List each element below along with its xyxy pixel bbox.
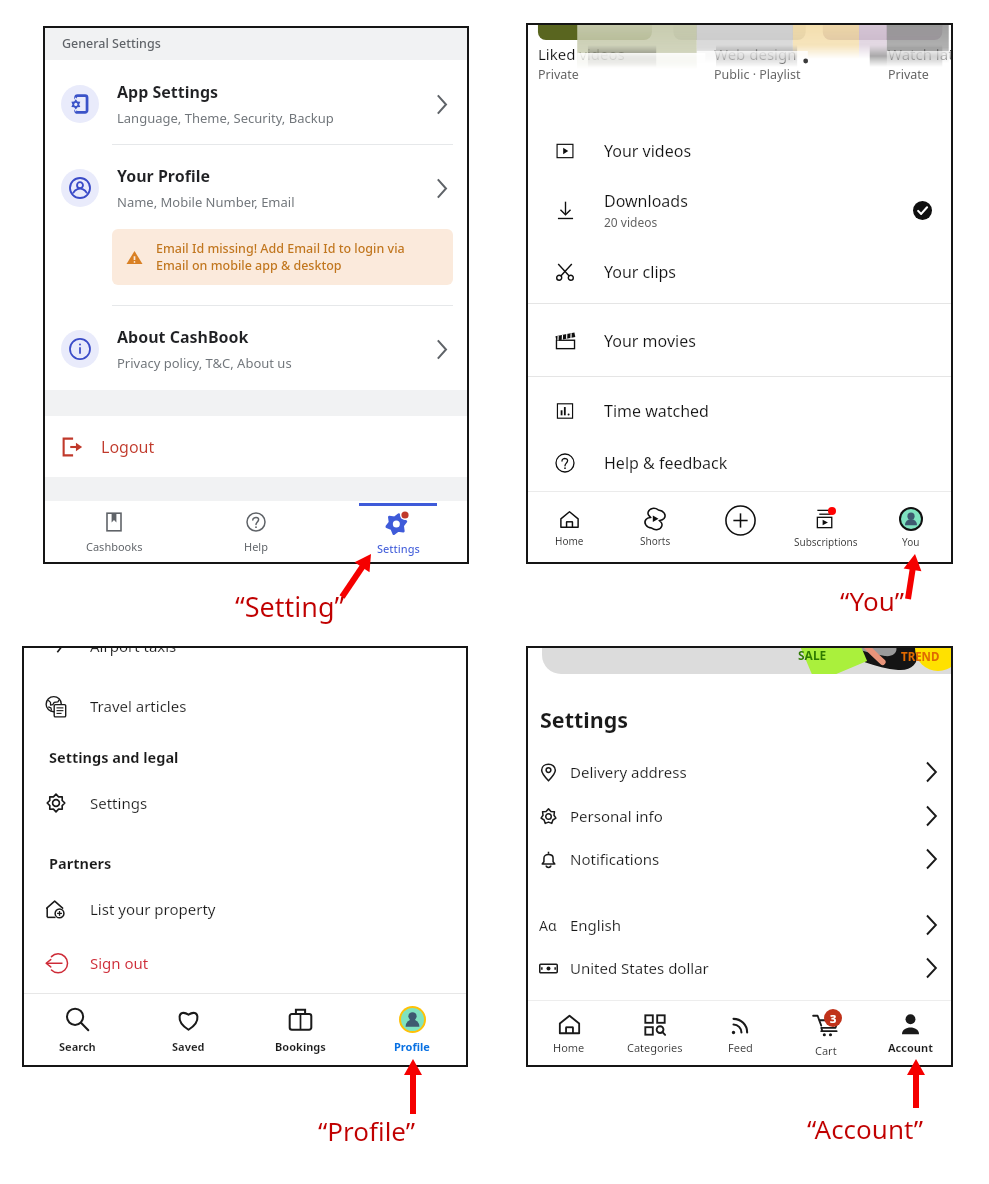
staticText: Delivery address	[570, 762, 687, 782]
staticText: Help & feedback	[604, 452, 728, 474]
staticText: Help	[244, 539, 268, 554]
button[interactable]: Create	[698, 495, 783, 561]
staticText: Saved	[172, 1039, 205, 1054]
button[interactable]: 3	[783, 1001, 868, 1067]
staticText: Shorts	[640, 534, 671, 548]
button[interactable]: Saved	[133, 994, 244, 1066]
button[interactable]: Your Profile	[43, 148, 469, 228]
button[interactable]: Your movies	[526, 318, 953, 364]
staticText: Categories	[627, 1040, 683, 1055]
button[interactable]: Airport taxis	[22, 646, 468, 661]
button[interactable]: App Settings	[43, 64, 469, 144]
button[interactable]: Subscriptions	[783, 495, 868, 561]
button[interactable]: Logout	[43, 416, 469, 477]
staticText: Personal info	[570, 806, 663, 826]
staticText: Subscriptions	[794, 535, 858, 549]
button[interactable]: Help & feedback	[526, 440, 953, 486]
button[interactable]: United States dollar	[526, 948, 953, 988]
staticText: Cashbooks	[86, 539, 143, 554]
staticText: Home	[555, 534, 584, 548]
staticText: Sign out	[90, 953, 149, 973]
button[interactable]: About CashBook	[43, 309, 469, 389]
button[interactable]: Time watched	[526, 388, 953, 434]
staticText: Privacy policy, T&C, About us	[117, 354, 292, 372]
staticText: Bookings	[275, 1039, 326, 1054]
staticText: Downloads	[604, 190, 688, 212]
button[interactable]: Feed	[698, 1001, 783, 1067]
staticText: Settings	[90, 793, 148, 813]
staticText: Logout	[101, 436, 155, 458]
button[interactable]: Aα	[526, 905, 953, 945]
button[interactable]: Categories	[612, 1001, 698, 1067]
button[interactable]: Personal info	[526, 796, 953, 836]
staticText: You	[902, 535, 920, 549]
staticText: Home	[553, 1040, 585, 1055]
staticText: Email Id missing! Add Email Id to login …	[156, 240, 405, 274]
button[interactable]: Settings	[22, 781, 468, 825]
staticText: Watch later	[888, 44, 953, 64]
button[interactable]: Travel articles	[22, 684, 468, 728]
staticText: Travel articles	[90, 696, 187, 716]
button[interactable]: Shorts	[612, 495, 698, 561]
staticText: About CashBook	[117, 326, 249, 348]
staticText: App Settings	[117, 81, 219, 103]
staticText: Your movies	[604, 330, 696, 352]
staticText: “Account”	[807, 1111, 924, 1146]
staticText: Airport taxis	[90, 646, 177, 656]
staticText: Feed	[728, 1040, 753, 1055]
staticText: Cart	[815, 1043, 837, 1058]
button[interactable]: Sign out	[22, 941, 468, 985]
staticText: English	[570, 915, 622, 935]
staticText: “Setting”	[235, 588, 345, 625]
staticText: Profile	[394, 1039, 430, 1054]
staticText: United States dollar	[570, 958, 709, 978]
button[interactable]: Your clips	[526, 249, 953, 295]
button[interactable]: List your property	[22, 887, 468, 931]
staticText: Web design	[714, 44, 797, 64]
staticText: Settings	[540, 705, 629, 734]
button[interactable]: Account	[868, 1001, 953, 1067]
staticText: Settings and legal	[49, 747, 179, 767]
button[interactable]: Search	[22, 994, 133, 1066]
staticText: Your Profile	[117, 165, 210, 187]
button[interactable]: Profile	[356, 994, 468, 1066]
button[interactable]: Help	[185, 501, 327, 564]
button[interactable]: Cashbooks	[43, 501, 185, 564]
staticText: Your clips	[604, 261, 677, 283]
button[interactable]: Settings	[327, 501, 469, 564]
button[interactable]: Notifications	[526, 839, 953, 879]
staticText: Liked videos	[538, 44, 625, 64]
staticText: Language, Theme, Security, Backup	[117, 109, 334, 127]
staticText: “Profile”	[318, 1113, 416, 1148]
staticText: TREND	[901, 649, 940, 665]
staticText: Your videos	[604, 140, 692, 162]
button[interactable]: Your videos	[526, 128, 953, 174]
button[interactable]: Home	[526, 1001, 612, 1067]
staticText: Partners	[49, 853, 112, 873]
button[interactable]: Downloads	[526, 184, 953, 236]
button[interactable]: Bookings	[244, 994, 356, 1066]
staticText: Aα	[539, 916, 557, 935]
button[interactable]: Home	[526, 495, 612, 561]
staticText: Public · Playlist	[714, 66, 801, 83]
staticText: General Settings	[62, 35, 161, 52]
staticText: Private	[888, 66, 929, 83]
button[interactable]: You	[868, 495, 953, 561]
staticText: 3	[830, 1011, 837, 1026]
staticText: Private	[538, 66, 579, 83]
staticText: SALE	[798, 647, 827, 663]
staticText: List your property	[90, 899, 216, 919]
staticText: Name, Mobile Number, Email	[117, 193, 295, 211]
button[interactable]: Delivery address	[526, 752, 953, 792]
staticText: 20 videos	[604, 214, 658, 230]
staticText: Notifications	[570, 849, 660, 869]
staticText: Search	[59, 1039, 96, 1054]
staticText: Account	[888, 1040, 933, 1055]
staticText: “You”	[840, 583, 905, 618]
staticText: Settings	[377, 541, 420, 556]
staticText: Time watched	[604, 400, 709, 422]
